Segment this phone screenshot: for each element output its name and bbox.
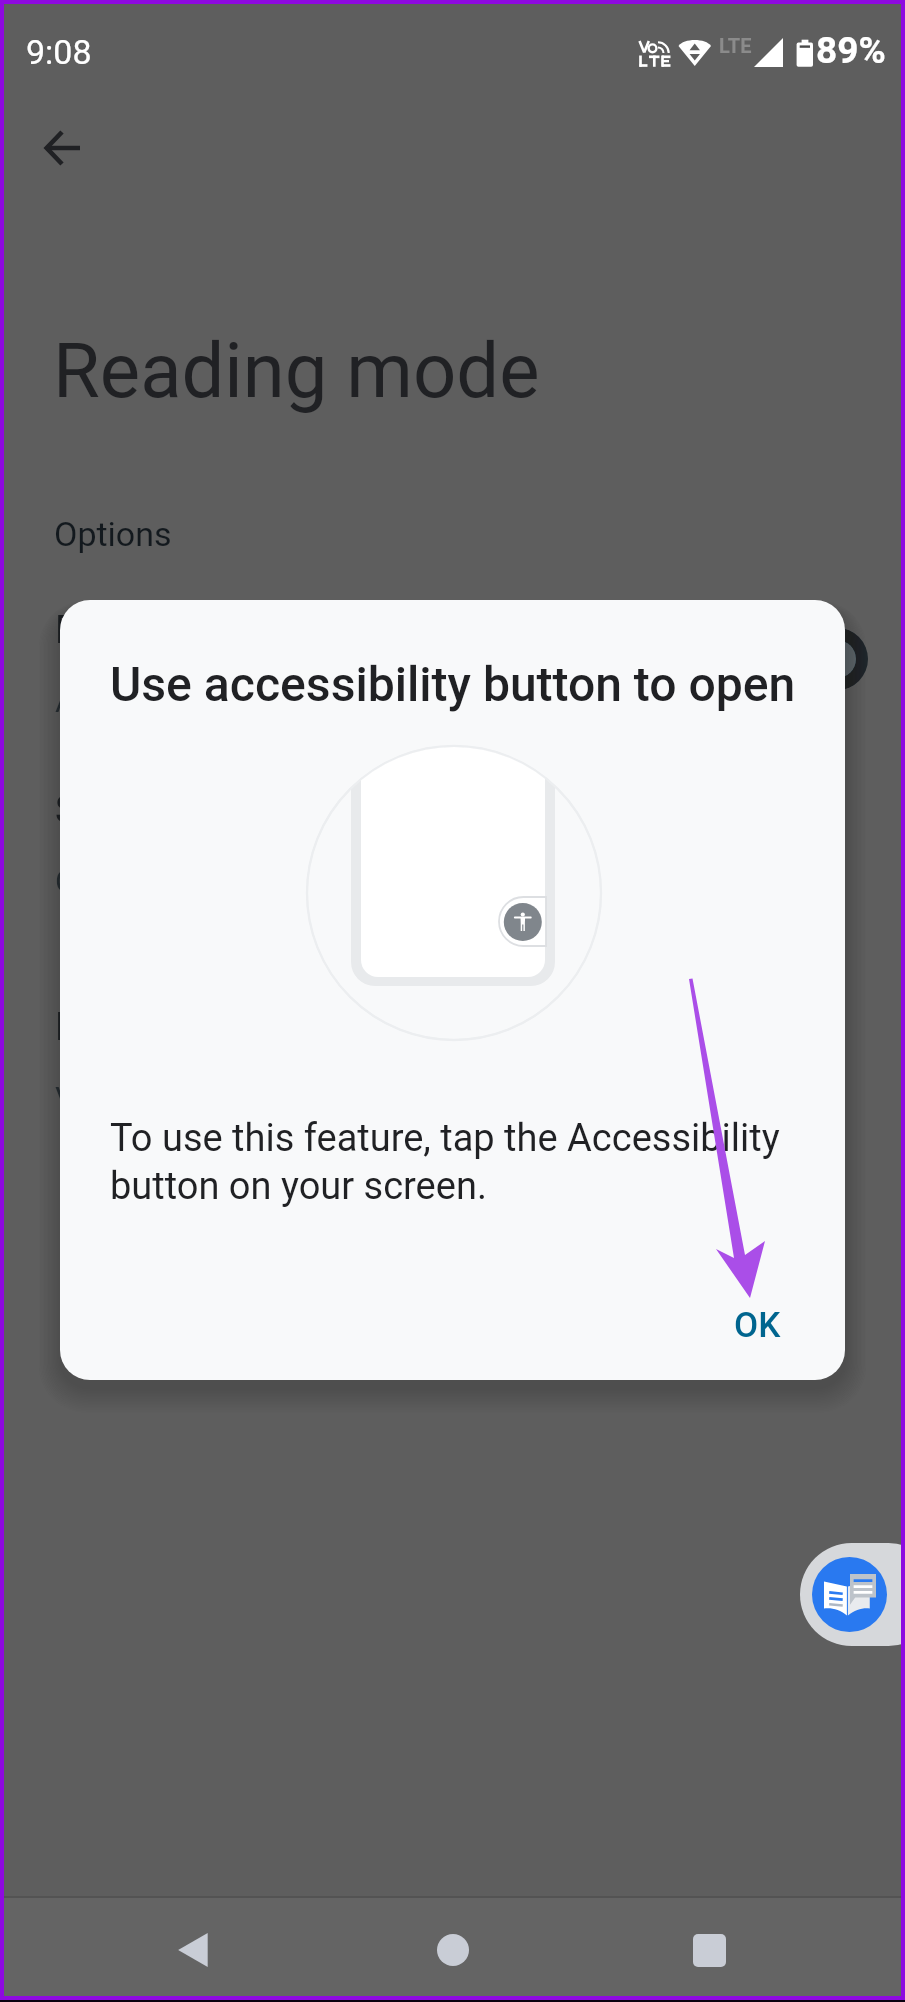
staticText: 89% bbox=[816, 29, 886, 72]
staticText: Reading mode bbox=[53, 326, 540, 415]
staticText: Select content bbox=[55, 788, 298, 833]
staticText: Accessibility button bbox=[55, 682, 335, 720]
staticText: OK bbox=[734, 1305, 781, 1346]
staticText: LTE bbox=[719, 34, 752, 57]
button[interactable]: OK bbox=[734, 1305, 781, 1346]
staticText: Choose what to read bbox=[55, 862, 349, 900]
staticText: Reading mode shortcut bbox=[55, 608, 450, 653]
staticText: 9:08 bbox=[26, 32, 92, 72]
staticText: To use this feature, tap the Accessibili… bbox=[110, 1116, 780, 1208]
button[interactable]: Accessibility shortcut bbox=[800, 1543, 905, 1646]
staticText: Options bbox=[54, 514, 172, 554]
staticText: Use accessibility button to open bbox=[110, 656, 796, 712]
button[interactable]: Home bbox=[413, 1910, 493, 1990]
button[interactable]: Navigate up bbox=[31, 116, 95, 180]
staticText: Voice settings bbox=[55, 1079, 257, 1117]
button[interactable]: Recent apps bbox=[669, 1910, 749, 1990]
button[interactable]: Back bbox=[154, 1910, 234, 1990]
staticText: Language bbox=[55, 1005, 222, 1050]
